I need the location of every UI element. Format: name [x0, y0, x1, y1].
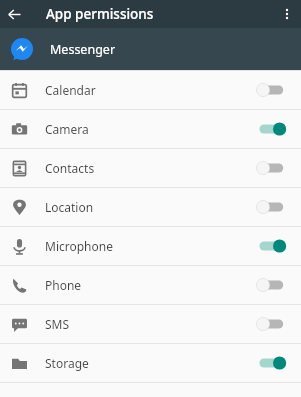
staticText: SMS: [45, 316, 70, 332]
button[interactable]: Off: [255, 313, 289, 335]
staticText: Calendar: [45, 82, 96, 98]
button[interactable]: More options: [273, 0, 301, 28]
button[interactable]: Storage: [0, 344, 301, 382]
button[interactable]: Camera: [0, 110, 301, 148]
button[interactable]: SMS: [0, 305, 301, 343]
staticText: Phone: [45, 277, 82, 293]
staticText: Microphone: [45, 238, 113, 254]
button[interactable]: Calendar: [0, 71, 301, 109]
button[interactable]: Back: [0, 0, 28, 28]
staticText: Messenger: [50, 41, 116, 58]
button[interactable]: Off: [255, 157, 289, 179]
button[interactable]: Location: [0, 188, 301, 226]
button[interactable]: Off: [255, 274, 289, 296]
staticText: App permissions: [46, 5, 154, 23]
button[interactable]: Microphone: [0, 227, 301, 265]
button[interactable]: On: [255, 352, 289, 374]
button[interactable]: Phone: [0, 266, 301, 304]
staticText: Contacts: [45, 160, 95, 176]
staticText: Storage: [45, 355, 89, 371]
button[interactable]: On: [255, 235, 289, 257]
button[interactable]: Contacts: [0, 149, 301, 187]
staticText: Location: [45, 199, 94, 215]
button[interactable]: Off: [255, 196, 289, 218]
button[interactable]: On: [255, 118, 289, 140]
button[interactable]: Messenger: [0, 28, 301, 70]
staticText: Camera: [45, 121, 89, 137]
button[interactable]: Off: [255, 79, 289, 101]
